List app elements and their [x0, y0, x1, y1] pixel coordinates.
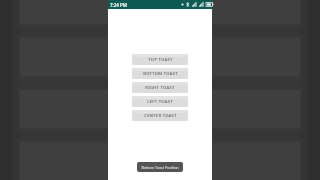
staticText: BOTTOM TOAST [143, 71, 178, 77]
button[interactable]: LEFT TOAST [132, 96, 188, 107]
other: Toast message [137, 162, 183, 172]
staticText: LEFT TOAST [147, 99, 173, 105]
staticText: Bottom Toast Position [141, 165, 179, 170]
button[interactable]: RIGHT TOAST [132, 82, 188, 93]
button[interactable]: BOTTOM TOAST [132, 68, 188, 79]
button[interactable]: TOP TOAST [132, 54, 188, 65]
staticText: RIGHT TOAST [145, 85, 175, 91]
staticText: CENTER TOAST [144, 113, 177, 119]
staticText: 7:24 PM [110, 2, 127, 8]
staticText: TOP TOAST [148, 57, 173, 63]
button[interactable]: CENTER TOAST [132, 110, 188, 121]
